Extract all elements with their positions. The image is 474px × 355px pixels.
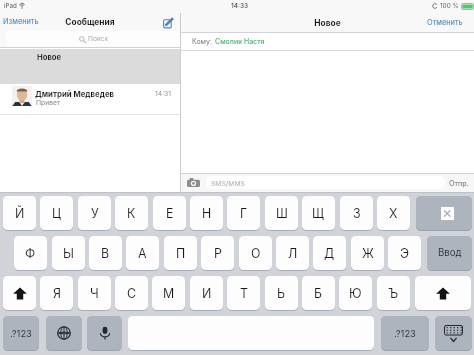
button[interactable]: .?123	[3, 316, 39, 350]
staticText: SMS/MMS	[211, 179, 245, 187]
staticText: Б	[314, 286, 323, 301]
staticText: Т	[240, 286, 248, 301]
button[interactable]: Backspace	[416, 196, 472, 230]
staticText: Отменить	[427, 18, 463, 27]
staticText: Е	[166, 206, 174, 221]
staticText: Ш	[276, 206, 288, 221]
button[interactable]: Shift	[3, 276, 36, 310]
staticText: Ъ	[388, 286, 399, 301]
button[interactable]: И	[190, 276, 223, 310]
staticText: Щ	[312, 206, 325, 221]
staticText: С	[127, 286, 137, 301]
staticText: М	[163, 286, 175, 301]
staticText: Х	[389, 206, 398, 221]
button[interactable]: Е	[153, 196, 186, 230]
button[interactable]: Отменить	[427, 18, 463, 27]
button[interactable]: П	[164, 236, 197, 270]
button[interactable]: .?123	[381, 316, 429, 350]
staticText: Отпр.	[449, 179, 469, 188]
button[interactable]: Ц	[40, 196, 73, 230]
staticText: 100 %	[440, 2, 459, 10]
staticText: Р	[214, 246, 222, 261]
button[interactable]: Й	[3, 196, 36, 230]
button[interactable]: Ж	[351, 236, 384, 270]
staticText: Новое	[181, 18, 474, 28]
button[interactable]: О	[239, 236, 272, 270]
staticText: Дмитрий Медведев	[35, 89, 115, 98]
staticText: Л	[288, 246, 298, 261]
staticText: .?123	[10, 328, 32, 339]
staticText: Г	[240, 206, 248, 221]
button[interactable]: Attach photo	[187, 178, 200, 187]
staticText: Я	[53, 286, 61, 301]
staticText: Э	[400, 246, 410, 261]
staticText: У	[91, 206, 99, 221]
button[interactable]: Б	[302, 276, 335, 310]
button[interactable]: Shift	[415, 276, 471, 310]
button[interactable]: Я	[40, 276, 73, 310]
button[interactable]: Д	[313, 236, 346, 270]
button[interactable]: Л	[276, 236, 309, 270]
button[interactable]: Ь	[265, 276, 298, 310]
staticText: Привет	[36, 98, 61, 106]
button[interactable]: Дмитрий Медведев	[0, 84, 180, 114]
staticText: К	[127, 206, 136, 221]
staticText: Ж	[362, 246, 374, 261]
button[interactable]: Р	[201, 236, 234, 270]
staticText: Ы	[63, 246, 74, 261]
button[interactable]: Ш	[265, 196, 298, 230]
staticText: П	[176, 246, 186, 261]
button[interactable]: Г	[227, 196, 260, 230]
button[interactable]: М	[152, 276, 185, 310]
button[interactable]: З	[340, 196, 373, 230]
staticText: Н	[202, 206, 212, 221]
staticText: Изменить	[3, 17, 39, 26]
staticText: Поиск	[88, 35, 109, 43]
staticText: З	[353, 206, 361, 221]
button[interactable]: Э	[388, 236, 421, 270]
staticText: А	[138, 246, 147, 261]
button[interactable]: Ы	[52, 236, 85, 270]
button[interactable]: Изменить	[3, 17, 39, 26]
button[interactable]: В	[89, 236, 122, 270]
staticText: 14:33	[231, 2, 249, 10]
staticText: Смолик Настя	[215, 37, 265, 45]
staticText: .?123	[394, 328, 416, 339]
button[interactable]: Ч	[78, 276, 111, 310]
button[interactable]: New message	[159, 14, 177, 32]
staticText: О	[251, 246, 261, 261]
button[interactable]: Ввод	[427, 236, 472, 270]
button[interactable]: А	[126, 236, 159, 270]
staticText: Новое	[37, 53, 62, 62]
button[interactable]: Switch keyboard	[46, 316, 82, 350]
button[interactable]: С	[115, 276, 148, 310]
staticText: 14:31	[155, 89, 172, 97]
button[interactable]: Поиск	[6, 31, 181, 47]
staticText: iPad	[4, 2, 17, 10]
staticText: Сообщения	[0, 17, 180, 27]
button[interactable]: Щ	[302, 196, 335, 230]
button[interactable]: Х	[377, 196, 410, 230]
button[interactable]: Ю	[339, 276, 372, 310]
button[interactable]: У	[78, 196, 111, 230]
button[interactable]: Ф	[14, 236, 47, 270]
button[interactable]: Отпр.	[449, 179, 469, 188]
button[interactable]: Т	[227, 276, 260, 310]
staticText: Й	[15, 206, 25, 221]
button[interactable]: Н	[190, 196, 223, 230]
staticText: В	[101, 246, 110, 261]
staticText: Ю	[349, 286, 362, 301]
staticText: Ввод	[438, 247, 462, 259]
button[interactable]: К	[115, 196, 148, 230]
staticText: Д	[324, 246, 335, 261]
button[interactable]: SMS/MMS	[206, 176, 445, 189]
button[interactable]: Dictate	[87, 316, 122, 350]
staticText: Ф	[25, 246, 36, 261]
staticText: И	[202, 286, 212, 301]
staticText: Ч	[90, 286, 99, 301]
button[interactable]: Ъ	[377, 276, 410, 310]
staticText: Кому:	[192, 37, 212, 45]
staticText: Ь	[277, 286, 286, 301]
button[interactable]: Hide keyboard	[435, 316, 472, 350]
